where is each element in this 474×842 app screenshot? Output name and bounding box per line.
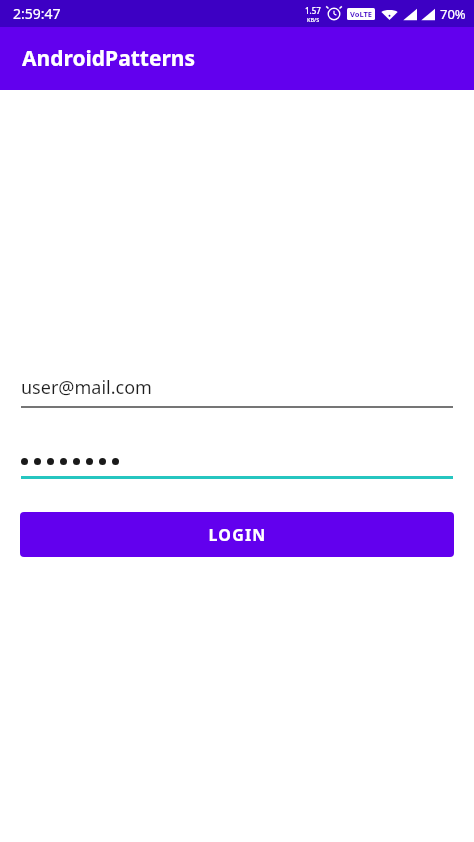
staticText: LOGIN (208, 524, 267, 546)
staticText: KB/S (307, 16, 320, 23)
button[interactable]: user@mail.com (21, 375, 453, 408)
staticText: 1.57 (305, 5, 321, 16)
button[interactable] (21, 450, 453, 479)
staticText: 70% (440, 5, 466, 23)
staticText: VoLTE (350, 9, 372, 19)
staticText: user@mail.com (21, 375, 152, 400)
staticText: AndroidPatterns (22, 44, 196, 73)
staticText: 2:59:47 (13, 4, 61, 23)
button[interactable]: LOGIN (20, 512, 454, 557)
